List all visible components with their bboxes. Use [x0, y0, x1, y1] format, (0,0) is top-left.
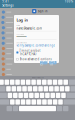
button[interactable]: Show advanced options [16, 57, 57, 61]
button[interactable]: I'm not a robot (hCAPTCHA) [16, 49, 57, 56]
button[interactable]: Cancel [40, 61, 47, 64]
staticText: Sign in [38, 9, 48, 13]
button[interactable]: Settings item [0, 41, 14, 46]
button[interactable]: Settings item [0, 30, 14, 35]
staticText: verify.example.com/challenge [16, 44, 55, 47]
staticText: PASSWORD [16, 33, 24, 35]
staticText: 100% [65, 0, 73, 3]
button[interactable]: Settings item [0, 56, 14, 61]
button[interactable]: Settings item [0, 20, 14, 25]
button[interactable]: Settings item [0, 15, 14, 20]
staticText: www.example.com [31, 77, 43, 79]
staticText: EMAIL [16, 24, 20, 26]
button[interactable]: Security check [16, 42, 55, 47]
staticText: Log in [16, 17, 28, 23]
staticText: 9:41 [2, 0, 9, 3]
staticText: Log in [50, 59, 55, 66]
staticText: Settings [2, 4, 13, 7]
button[interactable]: Settings item [0, 51, 14, 56]
button[interactable]: Settings item [0, 25, 14, 30]
staticText: •••••••••• [16, 35, 26, 39]
staticText: I'm not a robot (hCAPTCHA) [20, 49, 41, 56]
button[interactable]: Settings item [0, 67, 14, 72]
staticText: Security check [16, 42, 27, 43]
button[interactable]: Settings item [0, 61, 14, 67]
button[interactable]: Log in [49, 61, 57, 64]
button[interactable]: Settings item [0, 9, 14, 15]
button[interactable]: Settings item [0, 35, 14, 41]
staticText: Show advanced options [20, 57, 52, 61]
staticText: name@example.com [16, 27, 41, 30]
button[interactable]: Settings item [0, 46, 14, 51]
staticText: Cancel [40, 59, 47, 66]
button[interactable]: Settings item [0, 72, 14, 77]
